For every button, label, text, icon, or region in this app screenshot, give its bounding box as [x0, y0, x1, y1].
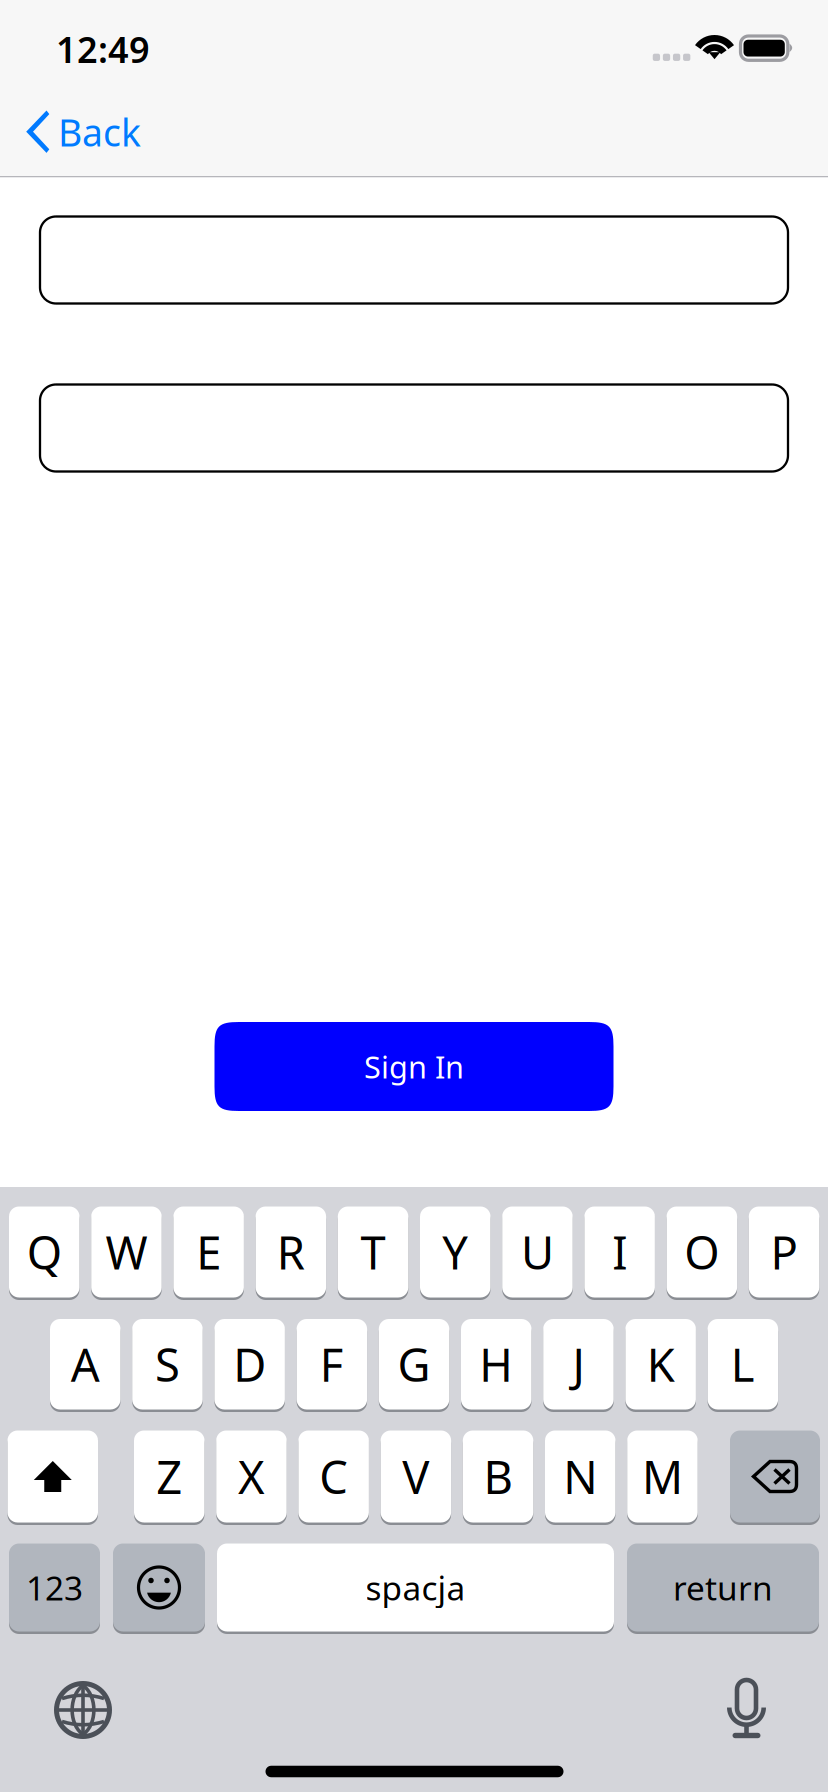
button[interactable]: Q [9, 1205, 79, 1299]
staticText: S [155, 1334, 180, 1394]
button[interactable]: K [625, 1317, 696, 1411]
button[interactable]: Dictation [694, 1670, 798, 1750]
staticText: U [521, 1222, 554, 1282]
button[interactable]: B [463, 1429, 533, 1524]
button[interactable]: P [749, 1205, 819, 1299]
staticText: J [572, 1334, 584, 1394]
staticText: 123 [26, 1565, 83, 1610]
button[interactable]: N [545, 1429, 615, 1524]
staticText: P [771, 1222, 798, 1282]
staticText: D [233, 1334, 266, 1394]
staticText: E [196, 1222, 221, 1282]
button[interactable]: Emoji [113, 1542, 205, 1633]
staticText: A [71, 1334, 100, 1394]
button[interactable]: U [502, 1205, 573, 1299]
button[interactable]: E [173, 1205, 244, 1299]
button[interactable]: W [91, 1205, 162, 1299]
button[interactable]: I [584, 1205, 655, 1299]
staticText: G [398, 1334, 431, 1394]
button[interactable]: H [461, 1317, 531, 1411]
button[interactable]: C [298, 1429, 369, 1524]
staticText: L [731, 1334, 755, 1394]
button[interactable]: 123 [9, 1542, 100, 1633]
button[interactable]: X [216, 1429, 287, 1524]
staticText: Z [156, 1446, 182, 1507]
button[interactable]: Delete [730, 1429, 820, 1524]
button[interactable]: O [667, 1205, 737, 1299]
staticText: V [402, 1446, 429, 1507]
staticText: O [684, 1222, 719, 1282]
button[interactable]: J [543, 1317, 614, 1411]
staticText: K [647, 1334, 675, 1394]
button[interactable]: Next keyboard [31, 1670, 135, 1750]
button[interactable]: Back [0, 88, 155, 176]
staticText: I [612, 1222, 627, 1282]
staticText: spacja [365, 1565, 465, 1610]
button[interactable]: Y [420, 1205, 490, 1299]
staticText: M [642, 1446, 683, 1507]
button[interactable]: R [256, 1205, 326, 1299]
staticText: H [479, 1334, 513, 1394]
staticText: N [563, 1446, 597, 1507]
button[interactable]: Z [134, 1429, 204, 1524]
staticText: return [673, 1565, 773, 1610]
button[interactable]: M [627, 1429, 698, 1524]
button[interactable]: L [708, 1317, 778, 1411]
button[interactable]: A [50, 1317, 120, 1411]
staticText: Sign In [364, 1046, 464, 1087]
button[interactable]: return [627, 1542, 819, 1633]
staticText: 12:49 [56, 25, 150, 73]
staticText: Y [442, 1222, 468, 1282]
staticText: W [105, 1222, 147, 1282]
button[interactable]: F [297, 1317, 367, 1411]
staticText: R [277, 1222, 305, 1282]
staticText: T [361, 1222, 386, 1282]
button[interactable]: G [379, 1317, 449, 1411]
button[interactable]: D [214, 1317, 285, 1411]
staticText: C [319, 1446, 348, 1507]
staticText: Back [58, 107, 141, 157]
button[interactable]: V [381, 1429, 451, 1524]
staticText: B [484, 1446, 513, 1507]
button[interactable]: Shift [7, 1429, 98, 1524]
staticText: X [238, 1446, 265, 1507]
button[interactable]: spacja [217, 1542, 614, 1633]
staticText: F [320, 1334, 344, 1394]
button[interactable]: T [338, 1205, 408, 1299]
staticText: Q [27, 1222, 62, 1282]
button[interactable]: Sign In [214, 1022, 613, 1111]
button[interactable]: S [132, 1317, 203, 1411]
